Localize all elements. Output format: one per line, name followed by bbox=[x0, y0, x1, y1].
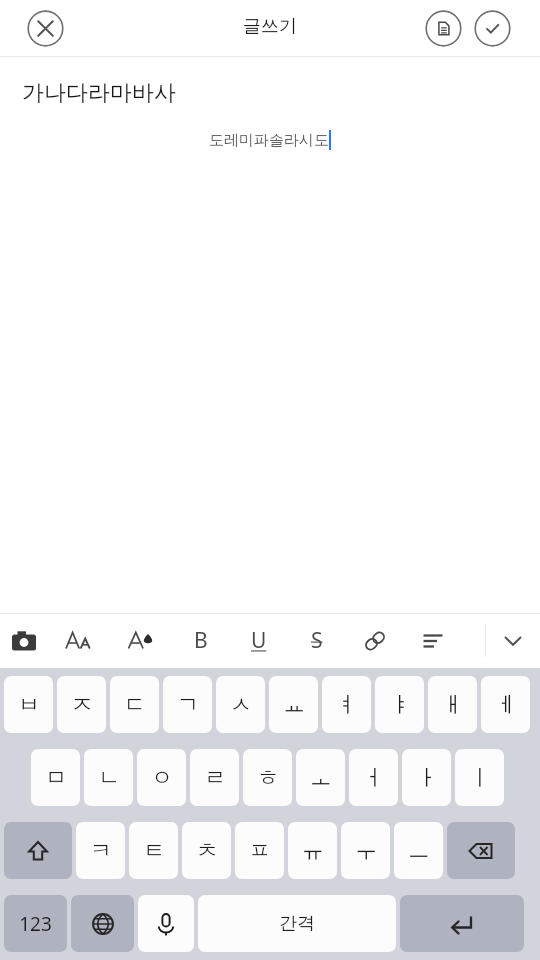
staticText: ㅗ bbox=[310, 764, 332, 792]
staticText: ㅊ bbox=[196, 837, 218, 865]
button[interactable]: ㅠ bbox=[288, 822, 337, 879]
button[interactable]: B bbox=[171, 613, 230, 668]
button[interactable]: ㅑ bbox=[375, 676, 424, 733]
staticText: ㅓ bbox=[363, 764, 385, 792]
staticText: ㄹ bbox=[204, 764, 226, 792]
staticText: ㅋ bbox=[90, 837, 112, 865]
button[interactable]: ㅇ bbox=[137, 749, 186, 806]
staticText: ㅈ bbox=[71, 691, 93, 719]
staticText: ㅑ bbox=[389, 691, 411, 719]
staticText: ㅌ bbox=[143, 837, 165, 865]
button[interactable]: Insert photo bbox=[0, 613, 47, 668]
button[interactable]: ㅛ bbox=[269, 676, 318, 733]
button[interactable]: 123 bbox=[4, 895, 67, 952]
button[interactable]: ㅅ bbox=[216, 676, 265, 733]
staticText: ㅔ bbox=[495, 691, 517, 719]
button[interactable]: ㅜ bbox=[341, 822, 390, 879]
button[interactable]: ㅣ bbox=[455, 749, 504, 806]
button[interactable]: Alignment bbox=[404, 613, 462, 668]
button[interactable]: Done bbox=[474, 10, 511, 47]
button[interactable]: S bbox=[288, 613, 346, 668]
staticText: B bbox=[194, 626, 208, 655]
button[interactable]: Hide toolbar bbox=[486, 613, 540, 668]
button[interactable]: Shift bbox=[4, 822, 72, 879]
staticText: ㅐ bbox=[442, 691, 464, 719]
staticText: ㅂ bbox=[18, 691, 40, 719]
button[interactable]: ㅕ bbox=[322, 676, 371, 733]
button[interactable]: Save draft bbox=[425, 10, 462, 47]
button[interactable]: Change language bbox=[71, 895, 134, 952]
button[interactable]: ㅌ bbox=[129, 822, 178, 879]
button[interactable]: ㅊ bbox=[182, 822, 231, 879]
staticText: 간격 bbox=[279, 912, 315, 935]
button[interactable]: Font size bbox=[47, 613, 109, 668]
button[interactable]: Backspace bbox=[447, 822, 515, 879]
button[interactable]: ㅁ bbox=[31, 749, 80, 806]
button[interactable]: ㅔ bbox=[481, 676, 530, 733]
staticText: U bbox=[251, 626, 267, 655]
button[interactable]: 간격 bbox=[198, 895, 396, 952]
button[interactable]: ㅂ bbox=[4, 676, 53, 733]
button[interactable]: ㅏ bbox=[402, 749, 451, 806]
button[interactable]: ㅗ bbox=[296, 749, 345, 806]
button[interactable]: ㅎ bbox=[243, 749, 292, 806]
button[interactable]: ㅍ bbox=[235, 822, 284, 879]
button[interactable]: Insert link bbox=[346, 613, 404, 668]
staticText: ㄱ bbox=[177, 691, 199, 719]
staticText: 123 bbox=[19, 911, 52, 937]
staticText: ㅣ bbox=[469, 764, 491, 792]
button[interactable]: Close bbox=[27, 10, 64, 47]
staticText: 가나다라마바사 bbox=[22, 79, 176, 107]
button[interactable]: ㄴ bbox=[84, 749, 133, 806]
staticText: ㄷ bbox=[124, 691, 146, 719]
button[interactable]: ㄹ bbox=[190, 749, 239, 806]
staticText: 글쓰기 bbox=[243, 15, 297, 38]
button[interactable]: ㅋ bbox=[76, 822, 125, 879]
staticText: ㄴ bbox=[98, 764, 120, 792]
button[interactable]: Enter bbox=[400, 895, 524, 952]
staticText: ㅡ bbox=[408, 837, 430, 865]
button[interactable]: ㅈ bbox=[57, 676, 106, 733]
staticText: ㅠ bbox=[302, 837, 324, 865]
staticText: ㅕ bbox=[336, 691, 358, 719]
button[interactable]: U bbox=[230, 613, 288, 668]
button[interactable]: Font colour bbox=[109, 613, 171, 668]
staticText: 도레미파솔라시도 bbox=[209, 131, 329, 150]
staticText: ㅏ bbox=[416, 764, 438, 792]
staticText: ㅇ bbox=[151, 764, 173, 792]
button[interactable]: ㅐ bbox=[428, 676, 477, 733]
button[interactable]: ㅡ bbox=[394, 822, 443, 879]
staticText: ㅅ bbox=[230, 691, 252, 719]
staticText: ㅍ bbox=[249, 837, 271, 865]
button[interactable]: Voice input bbox=[138, 895, 194, 952]
button[interactable]: ㄷ bbox=[110, 676, 159, 733]
staticText: ㅎ bbox=[257, 764, 279, 792]
staticText: ㅁ bbox=[45, 764, 67, 792]
button[interactable]: ㅓ bbox=[349, 749, 398, 806]
staticText: ㅛ bbox=[283, 691, 305, 719]
staticText: S bbox=[311, 626, 323, 655]
staticText: ㅜ bbox=[355, 837, 377, 865]
button[interactable]: ㄱ bbox=[163, 676, 212, 733]
